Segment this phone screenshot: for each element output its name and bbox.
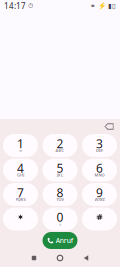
staticText: PQRS: [15, 197, 25, 202]
staticText: 9: [96, 184, 103, 200]
staticText: 7: [17, 184, 24, 200]
staticText: TUV: [56, 197, 63, 202]
staticText: 3: [96, 135, 103, 151]
button[interactable]: 6: [82, 158, 117, 181]
staticText: 6: [96, 160, 103, 176]
button[interactable]: 9: [82, 183, 117, 206]
button[interactable]: 2: [42, 134, 77, 157]
button[interactable]: Home: [47, 249, 73, 267]
button[interactable]: 5: [42, 158, 77, 181]
button[interactable]: 4: [3, 158, 38, 181]
staticText: MNO: [94, 172, 104, 178]
button[interactable]: [3, 207, 38, 230]
button[interactable]: Back: [73, 249, 99, 267]
button[interactable]: [82, 207, 117, 230]
button[interactable]: Anruf: [42, 232, 77, 249]
staticText: WXYZ: [94, 197, 104, 202]
button[interactable]: Backspace: [100, 120, 118, 133]
button[interactable]: 3: [82, 134, 117, 157]
staticText: ⏱: [26, 3, 33, 9]
staticText: 0: [56, 209, 63, 225]
staticText: ABC: [55, 148, 64, 153]
staticText: 8: [56, 184, 63, 200]
staticText: ▮▯: [106, 2, 116, 10]
staticText: +: [59, 221, 61, 227]
button[interactable]: Recent apps: [21, 249, 47, 267]
button[interactable]: 7: [3, 183, 38, 206]
staticText: JKL: [57, 172, 63, 178]
staticText: DEF: [96, 148, 103, 153]
staticText: 1: [17, 135, 24, 151]
button[interactable]: 0: [42, 207, 77, 230]
staticText: GHI: [17, 172, 24, 178]
staticText: 2: [56, 135, 63, 151]
staticText: 4: [17, 160, 24, 176]
staticText: Anruf: [56, 236, 73, 245]
staticText: 14:17: [4, 1, 26, 11]
staticText: ∞: [19, 148, 22, 153]
button[interactable]: 1: [3, 134, 38, 157]
staticText: ⚭ ⚡: [90, 2, 106, 10]
button[interactable]: 8: [42, 183, 77, 206]
staticText: 5: [56, 160, 63, 176]
